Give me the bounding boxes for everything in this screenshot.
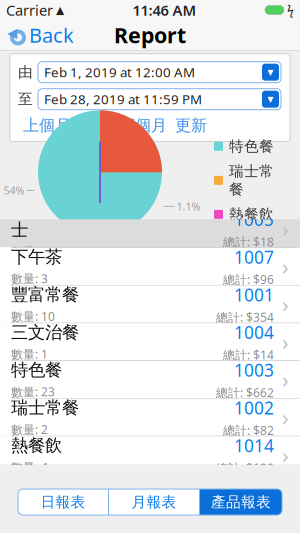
button[interactable]: 瑞士常餐: [0, 399, 300, 436]
button[interactable]: 更新: [171, 116, 211, 135]
button[interactable]: 下個月: [115, 116, 171, 135]
staticText: 熱餐飲: [11, 435, 62, 456]
staticText: Carrier: [6, 0, 53, 20]
staticText: Back: [29, 22, 74, 48]
staticText: 豐富常餐: [11, 284, 79, 305]
staticText: 月報表: [131, 493, 176, 511]
staticText: 1005: [234, 208, 274, 231]
button[interactable]: 豐富常餐: [0, 286, 300, 323]
staticText: Feb 28, 2019 at 11:59 PM: [44, 90, 202, 108]
staticText: 日報表: [40, 493, 85, 511]
button[interactable]: Feb 28, 2019 at 11:59 PM: [38, 89, 281, 110]
staticText: ›: [282, 365, 289, 394]
staticText: ›: [282, 403, 289, 431]
button[interactable]: 上個月: [19, 116, 75, 135]
button[interactable]: 下午茶: [0, 248, 300, 286]
staticText: 總計: $354: [216, 309, 274, 325]
staticText: 數量: 23: [11, 384, 55, 400]
button[interactable]: 超級厚多士: [0, 210, 300, 248]
staticText: ›: [282, 252, 289, 281]
staticText: 數量: 4: [11, 459, 48, 475]
staticText: 數量: 10: [11, 308, 55, 324]
staticText: ▲: [53, 4, 64, 16]
staticText: 1002: [234, 396, 274, 419]
staticText: Report: [114, 21, 186, 49]
staticText: 1.1%: [176, 199, 200, 213]
button[interactable]: 本月: [75, 116, 115, 135]
staticText: 瑞士常餐: [11, 397, 79, 418]
staticText: 熱餐飲: [229, 205, 274, 223]
staticText: 產品報表: [211, 493, 271, 511]
staticText: 54%: [3, 183, 24, 197]
staticText: ›: [282, 290, 289, 318]
button[interactable]: 熱餐飲: [0, 436, 300, 474]
staticText: 更新: [175, 116, 207, 135]
staticText: 數量: 1: [11, 244, 48, 259]
staticText: ›: [282, 441, 289, 469]
staticText: 瑞士常餐: [229, 162, 274, 198]
button[interactable]: ◀: [0, 20, 96, 50]
button[interactable]: 日報表: [18, 489, 108, 515]
staticText: ›: [282, 215, 289, 243]
staticText: ›: [282, 328, 289, 356]
staticText: 數量: 2: [11, 421, 48, 437]
button[interactable]: 特色餐: [0, 361, 300, 399]
staticText: 本月: [79, 116, 111, 135]
staticText: 三文治餐: [11, 322, 79, 343]
staticText: 總計: $96: [223, 271, 274, 287]
staticText: ◀: [7, 25, 17, 40]
staticText: ϟ: [284, 2, 294, 18]
staticText: 數量: 1: [11, 346, 48, 362]
staticText: 總計: $662: [216, 385, 274, 400]
button[interactable]: Feb 1, 2019 at 12:00 AM: [38, 62, 281, 83]
staticText: 特色餐: [11, 359, 62, 381]
staticText: 總計: $120: [216, 460, 274, 476]
staticText: 總計: $18: [223, 234, 274, 250]
staticText: 數量: 3: [11, 271, 48, 286]
staticText: 由: [18, 63, 33, 81]
staticText: 上個月: [23, 116, 71, 135]
staticText: 至: [18, 90, 33, 108]
button[interactable]: 三文治餐: [0, 323, 300, 361]
staticText: 總計: $82: [223, 422, 274, 438]
staticText: 下個月: [119, 116, 167, 135]
staticText: ▼: [267, 95, 273, 104]
staticText: 1001: [234, 283, 274, 306]
staticText: 特色餐: [229, 137, 274, 155]
staticText: 1014: [234, 434, 274, 457]
button[interactable]: 產品報表: [200, 489, 282, 515]
staticText: 1004: [234, 321, 274, 344]
staticText: 1003: [234, 359, 274, 382]
staticText: ▼: [267, 68, 273, 77]
staticText: 11:46 AM: [132, 0, 196, 20]
button[interactable]: 月報表: [109, 489, 199, 515]
staticText: 總計: $14: [223, 347, 274, 363]
staticText: 1007: [234, 245, 274, 268]
staticText: Feb 1, 2019 at 12:00 AM: [44, 63, 195, 81]
staticText: 下午茶: [11, 246, 62, 268]
staticText: 超級厚多士: [11, 198, 79, 241]
